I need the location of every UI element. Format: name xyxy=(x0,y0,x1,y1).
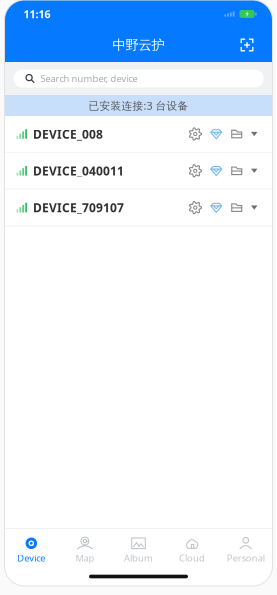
staticText: DEVICE_008 xyxy=(33,126,103,142)
button[interactable]: Personal xyxy=(219,535,272,565)
staticText: 11:16 xyxy=(23,7,50,21)
button[interactable]: Album xyxy=(112,535,165,565)
button[interactable]: DEVICE_040011 xyxy=(4,153,272,189)
button[interactable]: Recordings xyxy=(222,201,243,214)
staticText: Album xyxy=(124,552,153,564)
button[interactable]: DEVICE_008 xyxy=(4,116,272,152)
staticText: Search number, device xyxy=(40,72,137,85)
staticText: Map xyxy=(75,552,94,564)
button[interactable]: DEVICE_709107 xyxy=(4,190,272,226)
button[interactable]: More options xyxy=(243,132,257,136)
staticText: 中野云护 xyxy=(112,37,164,53)
button[interactable]: Recordings xyxy=(222,128,243,140)
staticText: Device xyxy=(17,552,45,564)
staticText: DEVICE_040011 xyxy=(33,163,124,179)
button[interactable]: More options xyxy=(243,169,257,173)
button[interactable]: Cloud plan xyxy=(202,165,222,177)
button[interactable]: Map xyxy=(58,535,112,565)
button[interactable]: Device settings xyxy=(188,201,202,214)
button[interactable]: Cloud plan xyxy=(202,128,222,140)
staticText: Personal xyxy=(227,552,265,564)
button[interactable]: Scan QR code xyxy=(234,32,259,57)
staticText: 已安装连接:3 台设备 xyxy=(88,98,188,113)
button[interactable]: Cloud xyxy=(165,535,219,565)
button[interactable]: Recordings xyxy=(222,165,243,177)
button[interactable]: Cloud plan xyxy=(202,201,222,214)
button[interactable]: Device settings xyxy=(188,127,202,141)
button[interactable]: Device settings xyxy=(188,164,202,178)
staticText: DEVICE_709107 xyxy=(33,200,124,215)
button[interactable]: Device xyxy=(4,535,58,565)
button[interactable]: More options xyxy=(243,205,257,210)
staticText: Cloud xyxy=(179,552,205,564)
